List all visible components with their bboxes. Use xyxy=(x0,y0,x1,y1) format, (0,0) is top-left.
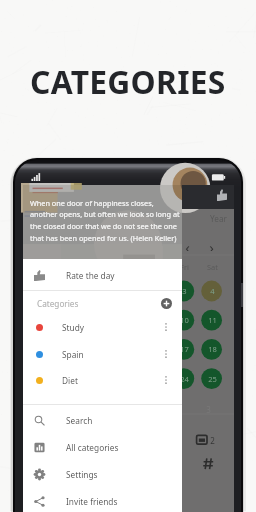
button[interactable]: Search xyxy=(23,407,182,433)
staticText: Fri xyxy=(180,262,189,272)
staticText: ‹ xyxy=(185,237,190,251)
button[interactable]: Rate the day xyxy=(182,185,234,209)
staticText: Sat xyxy=(207,262,218,272)
staticText: When one door of happiness closes, anoth… xyxy=(30,198,180,243)
staticText: Search xyxy=(66,415,93,426)
staticText: 3 xyxy=(182,286,187,296)
staticText: Categories xyxy=(37,298,79,309)
button[interactable]: Diet xyxy=(23,367,182,393)
button[interactable]: More options xyxy=(156,317,176,337)
staticText: Year xyxy=(210,213,227,224)
button[interactable]: Study xyxy=(23,314,182,340)
staticText: Study xyxy=(62,322,85,333)
staticText: 20 xyxy=(69,374,78,384)
staticText: 1 xyxy=(126,286,131,296)
staticText: Rate the day xyxy=(66,270,115,281)
staticText: 25 xyxy=(208,374,217,384)
staticText: Sun xyxy=(38,262,52,272)
staticText: 17 xyxy=(180,344,189,354)
staticText: Diet xyxy=(62,375,78,386)
staticText: Invite friends xyxy=(66,496,118,507)
staticText: 18 xyxy=(208,344,217,354)
staticText: 13 xyxy=(69,344,78,354)
staticText: Settings xyxy=(66,469,98,480)
staticText: 4 xyxy=(210,286,215,296)
button[interactable]: More options xyxy=(156,344,176,364)
staticText: 19 xyxy=(41,374,50,384)
button[interactable]: Add category xyxy=(156,293,176,313)
button[interactable]: Settings xyxy=(23,461,182,487)
staticText: 2 xyxy=(210,435,215,446)
staticText: CATEGORIES xyxy=(30,60,226,103)
staticText: All categories xyxy=(66,442,119,453)
staticText: 2 xyxy=(154,286,159,296)
staticText: 12 xyxy=(41,344,50,354)
staticText: 10 xyxy=(180,315,189,325)
button[interactable]: Invite friends xyxy=(23,488,182,512)
staticText: 24 xyxy=(180,374,189,384)
button[interactable]: More options xyxy=(156,370,176,390)
staticText: › xyxy=(209,237,214,251)
staticText: 11 xyxy=(208,315,217,325)
other: Status bar xyxy=(23,158,234,185)
button[interactable]: All categories xyxy=(23,434,182,460)
button[interactable]: Rate the day xyxy=(23,262,182,288)
staticText: Spain xyxy=(62,349,84,360)
button[interactable]: Spain xyxy=(23,341,182,367)
